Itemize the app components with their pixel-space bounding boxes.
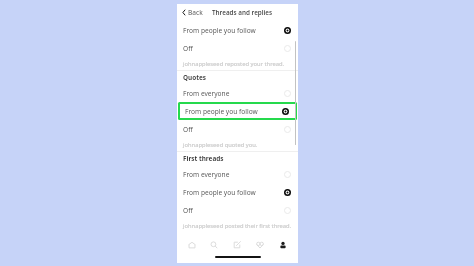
button[interactable]: Profile (271, 235, 294, 255)
staticText: Off (183, 206, 284, 215)
staticText: johnappleseed posted their first thread. (183, 222, 292, 230)
button[interactable]: From people you follow (177, 183, 298, 201)
staticText: From people you follow (185, 107, 282, 116)
staticText: johnappleseed reposted your thread. (183, 60, 285, 68)
staticText: Threads and replies (212, 8, 273, 17)
button[interactable]: Off (177, 39, 298, 57)
staticText: From everyone (183, 89, 284, 98)
staticText: First threads (183, 154, 224, 163)
button[interactable]: From everyone (177, 84, 298, 102)
staticText: Off (183, 125, 284, 134)
staticText: Off (183, 44, 284, 53)
button[interactable]: New thread (225, 235, 248, 255)
button[interactable]: Off (177, 120, 298, 138)
button[interactable]: Activity (248, 235, 271, 255)
button[interactable]: Home (181, 235, 203, 255)
button[interactable]: From people you follow (177, 21, 298, 39)
button[interactable]: From everyone (177, 165, 298, 183)
button[interactable]: Search (203, 235, 225, 255)
button[interactable]: Back (181, 6, 204, 19)
button[interactable]: Off (177, 201, 298, 219)
staticText: Quotes (183, 73, 206, 82)
staticText: From people you follow (183, 188, 284, 197)
staticText: From people you follow (183, 26, 284, 35)
button[interactable]: From people you follow (177, 102, 298, 120)
staticText: From everyone (183, 170, 284, 179)
staticText: Back (188, 8, 203, 17)
staticText: johnappleseed quoted you. (183, 141, 258, 149)
